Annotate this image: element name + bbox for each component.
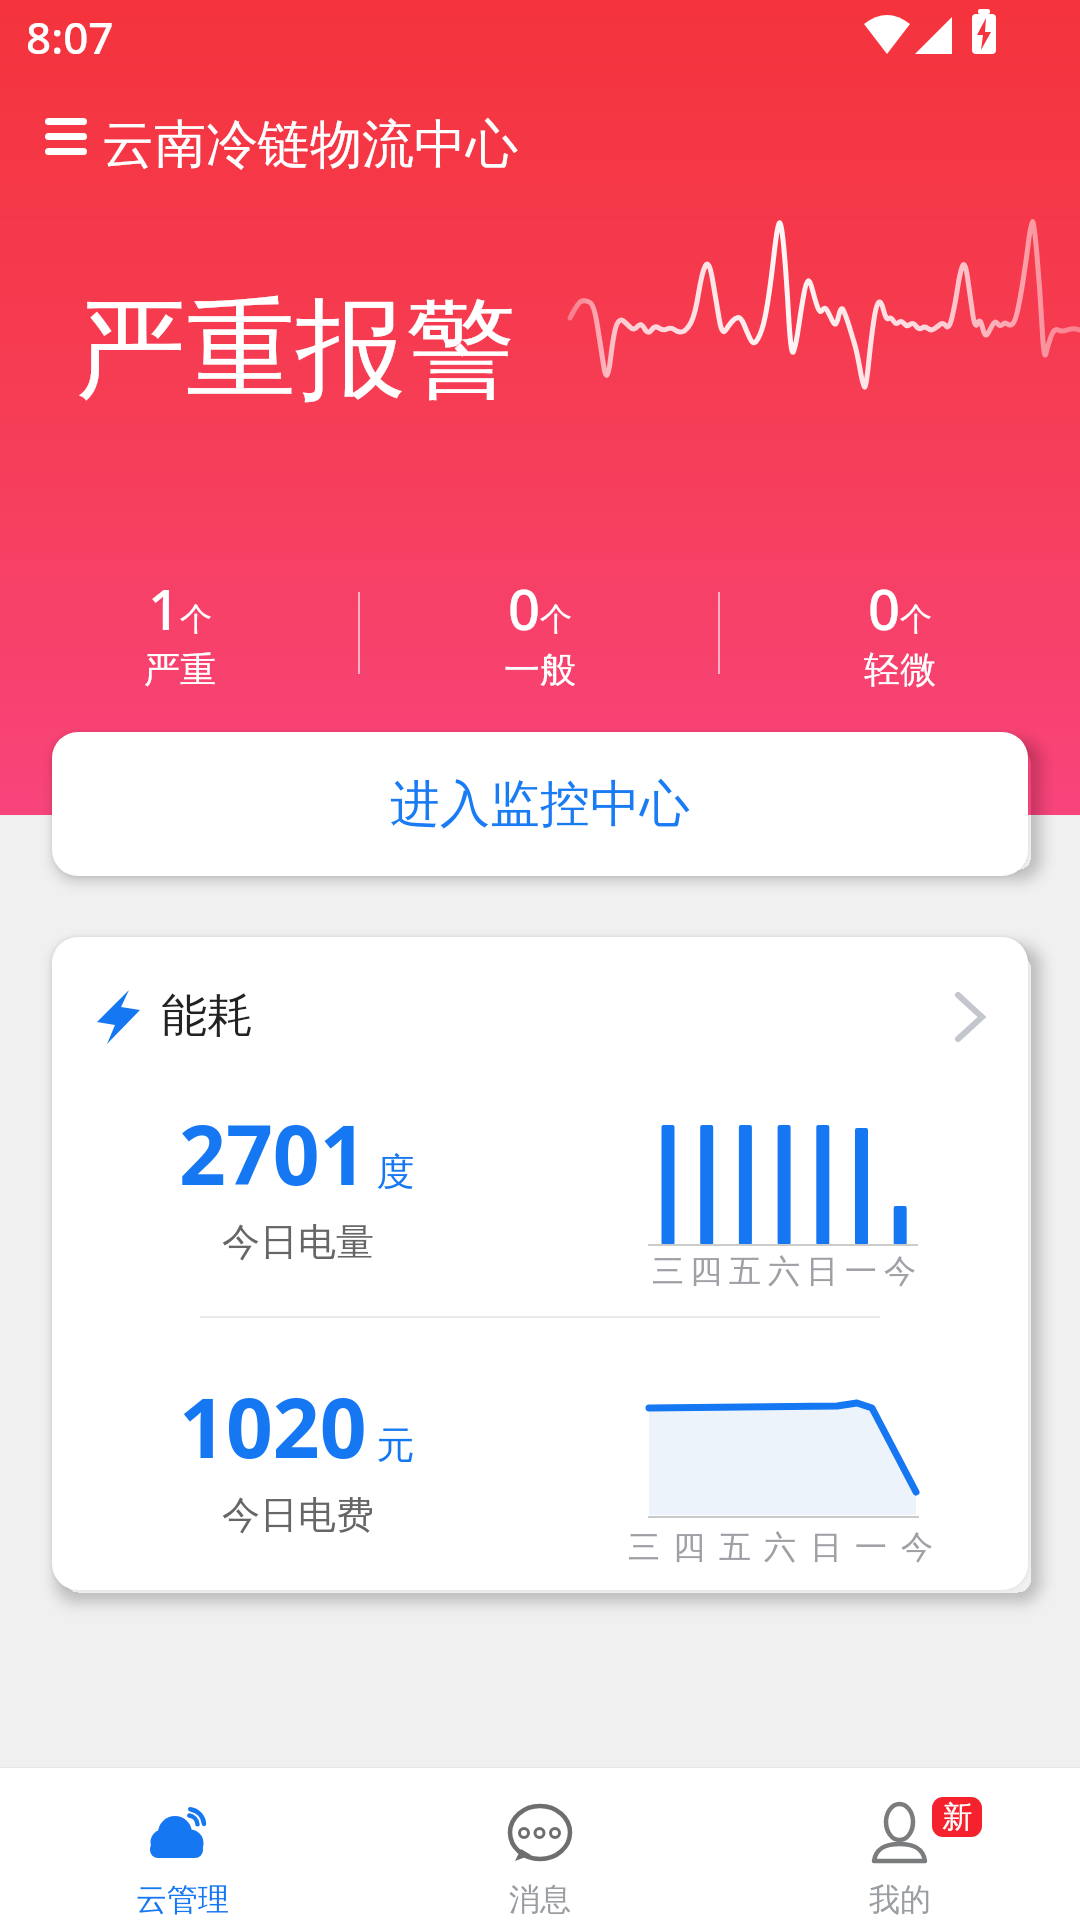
- staticText: 四: [673, 1527, 705, 1567]
- staticText: 新: [942, 1798, 972, 1836]
- staticText: 0个: [868, 570, 933, 640]
- button[interactable]: 1个: [60, 570, 300, 690]
- staticText: 消息: [509, 1880, 571, 1919]
- button[interactable]: 云管理: [92, 1767, 272, 1920]
- staticText: 今: [884, 1251, 916, 1291]
- staticText: 今日电费: [222, 1491, 374, 1539]
- staticText: 一: [855, 1527, 887, 1567]
- staticText: 今: [901, 1527, 933, 1567]
- staticText: 六: [764, 1527, 796, 1567]
- staticText: 轻微: [864, 647, 936, 692]
- staticText: 1个: [148, 570, 213, 640]
- staticText: 严重报警: [76, 281, 516, 420]
- button[interactable]: 能耗: [52, 937, 1028, 1590]
- button[interactable]: 消息: [450, 1767, 630, 1920]
- staticText: 云管理: [136, 1880, 229, 1919]
- staticText: 云南冷链物流中心: [102, 112, 518, 178]
- button[interactable]: 我的: [810, 1767, 990, 1920]
- staticText: 我的: [869, 1880, 931, 1919]
- button[interactable]: 0个: [420, 570, 660, 690]
- staticText: 2701 度: [179, 1097, 415, 1209]
- button[interactable]: 0个: [780, 570, 1020, 690]
- staticText: 1020 元: [179, 1370, 415, 1482]
- staticText: 0个: [508, 570, 573, 640]
- staticText: 日: [806, 1251, 838, 1291]
- staticText: 四: [690, 1251, 722, 1291]
- staticText: 日: [810, 1527, 842, 1567]
- button[interactable]: 进入监控中心: [52, 732, 1028, 876]
- staticText: 一般: [504, 647, 576, 692]
- staticText: 进入监控中心: [390, 773, 690, 836]
- button[interactable]: [38, 110, 94, 162]
- staticText: 五: [729, 1251, 761, 1291]
- staticText: 8:07: [26, 7, 114, 67]
- staticText: 严重: [144, 647, 216, 692]
- staticText: 三: [652, 1251, 684, 1291]
- staticText: 三: [628, 1527, 660, 1567]
- staticText: 今日电量: [222, 1218, 374, 1266]
- staticText: 能耗: [161, 987, 253, 1045]
- staticText: 六: [768, 1251, 800, 1291]
- staticText: 一: [845, 1251, 877, 1291]
- staticText: 五: [719, 1527, 751, 1567]
